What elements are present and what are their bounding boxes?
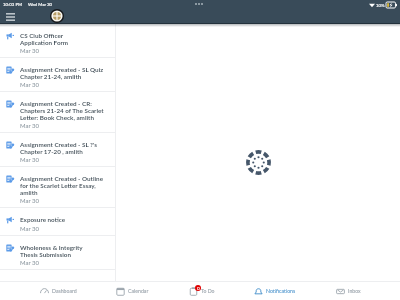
staticText: Mar 30	[20, 259, 40, 266]
staticText: Dashboard	[52, 288, 77, 294]
button[interactable]: Calendar	[116, 282, 149, 300]
staticText: Mar 30	[20, 156, 40, 163]
button[interactable]: Inbox	[336, 282, 361, 300]
button[interactable]: Assignment Created - SL ?'s Chapter 17-2…	[0, 133, 115, 166]
button[interactable]: Dashboard	[40, 282, 77, 300]
staticText: Mar 30	[20, 197, 40, 204]
staticText: Assignment Created - Outline for the Sca…	[20, 175, 104, 196]
staticText: CS Club Officer Application Form	[20, 32, 69, 46]
staticText: Exposure notice	[20, 216, 66, 224]
button[interactable]: Notifications	[254, 282, 296, 300]
staticText: Wed Mar 30	[28, 2, 53, 7]
staticText: To Do	[201, 288, 215, 294]
staticText: 10%	[376, 3, 385, 8]
staticText: Assignment Created - SL Quiz Chapter 21-…	[20, 66, 104, 80]
staticText: Assignment Created - CR: Chapters 21-24 …	[20, 100, 104, 121]
staticText: Mar 30	[20, 47, 40, 54]
staticText: Notifications	[266, 288, 296, 294]
staticText: Calendar	[128, 288, 149, 294]
staticText: Mar 30	[20, 81, 40, 88]
staticText: Assignment Created - SL ?'s Chapter 17-2…	[20, 141, 97, 155]
staticText: Mar 30	[20, 225, 40, 232]
staticText: Wholeness & Integrity Thesis Submission	[20, 244, 83, 258]
button[interactable]: Assignment Created - Outline for the Sca…	[0, 167, 115, 207]
button[interactable]: Menu	[1, 11, 19, 23]
staticText: Inbox	[348, 288, 361, 294]
staticText: Mar 30	[20, 122, 40, 129]
button[interactable]: Assignment Created - SL Quiz Chapter 21-…	[0, 58, 115, 91]
button[interactable]: Wholeness & Integrity Thesis Submission	[0, 236, 115, 269]
staticText: 0	[197, 286, 200, 291]
button[interactable]: CS Club Officer Application Form	[0, 24, 115, 57]
button[interactable]: Exposure notice	[0, 208, 115, 235]
staticText: 10:03 PM	[3, 2, 23, 7]
button[interactable]: 0	[189, 282, 215, 300]
button[interactable]: Assignment Created - CR: Chapters 21-24 …	[0, 92, 115, 132]
